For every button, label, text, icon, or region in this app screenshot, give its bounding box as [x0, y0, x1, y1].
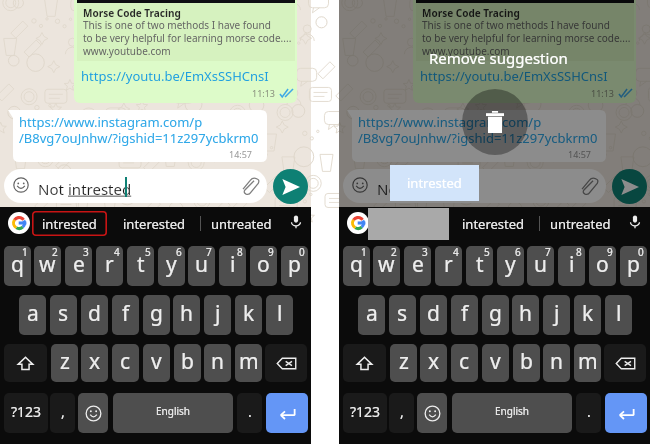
- button[interactable]: p: [281, 246, 308, 286]
- staticText: 5: [484, 246, 490, 259]
- button[interactable]: s: [50, 295, 77, 335]
- button[interactable]: Backspace: [604, 344, 646, 382]
- button[interactable]: t: [127, 246, 154, 286]
- button[interactable]: w: [34, 246, 61, 286]
- button[interactable]: Emoji: [417, 393, 447, 433]
- button[interactable]: u: [188, 246, 215, 286]
- staticText: t: [476, 250, 484, 279]
- button[interactable]: w: [373, 246, 400, 286]
- button[interactable]: v: [482, 344, 509, 382]
- staticText: a: [366, 299, 378, 328]
- staticText: j: [215, 299, 221, 328]
- button[interactable]: p: [620, 246, 647, 286]
- button[interactable]: e: [65, 246, 92, 286]
- button[interactable]: g: [482, 295, 509, 335]
- staticText: n: [211, 347, 224, 376]
- button[interactable]: ?123: [343, 393, 387, 433]
- button[interactable]: Voice input: [283, 209, 308, 234]
- staticText: l: [277, 299, 283, 328]
- button[interactable]: interested: [116, 210, 192, 237]
- button[interactable]: n: [543, 344, 570, 382]
- button[interactable]: English: [113, 393, 233, 433]
- button[interactable]: ?123: [4, 393, 48, 433]
- staticText: b: [520, 347, 533, 376]
- button[interactable]: Enter: [266, 393, 308, 433]
- button[interactable]: b: [513, 344, 540, 382]
- staticText: to be very helpful for learning morse co…: [422, 31, 631, 45]
- button[interactable]: Enter: [605, 393, 647, 433]
- staticText: www.youtube.com: [422, 44, 510, 58]
- button[interactable]: c: [112, 344, 139, 382]
- button[interactable]: k: [235, 295, 262, 335]
- button[interactable]: r: [435, 246, 462, 286]
- button[interactable]: Not: [4, 169, 267, 203]
- button[interactable]: v: [143, 344, 170, 382]
- staticText: t: [137, 250, 145, 279]
- button[interactable]: j: [204, 295, 231, 335]
- button[interactable]: Send: [612, 169, 647, 204]
- button[interactable]: e: [404, 246, 431, 286]
- button[interactable]: English: [452, 393, 572, 433]
- button[interactable]: x: [420, 344, 447, 382]
- button[interactable]: Google: [347, 212, 369, 234]
- button[interactable]: n: [204, 344, 231, 382]
- button[interactable]: untreated: [205, 210, 277, 237]
- button[interactable]: intrested: [32, 211, 107, 236]
- staticText: 1: [22, 246, 28, 259]
- button[interactable]: j: [543, 295, 570, 335]
- button[interactable]: l: [266, 295, 293, 335]
- button[interactable]: d: [420, 295, 447, 335]
- button[interactable]: o: [250, 246, 277, 286]
- button[interactable]: Send: [273, 169, 308, 204]
- button[interactable]: o: [589, 246, 616, 286]
- button[interactable]: b: [174, 344, 201, 382]
- button[interactable]: l: [605, 295, 632, 335]
- button[interactable]: ,: [389, 393, 414, 433]
- button[interactable]: .: [237, 393, 262, 433]
- button[interactable]: Shift: [343, 344, 386, 382]
- button[interactable]: .: [576, 393, 601, 433]
- button[interactable]: q: [343, 246, 370, 286]
- button[interactable]: d: [81, 295, 108, 335]
- button[interactable]: z: [51, 344, 78, 382]
- button[interactable]: y: [158, 246, 185, 286]
- button[interactable]: h: [173, 295, 200, 335]
- button[interactable]: m: [235, 344, 262, 382]
- button[interactable]: f: [451, 295, 478, 335]
- button[interactable]: h: [512, 295, 539, 335]
- staticText: i: [569, 250, 575, 279]
- button[interactable]: c: [451, 344, 478, 382]
- button[interactable]: q: [4, 246, 31, 286]
- button[interactable]: y: [497, 246, 524, 286]
- button[interactable]: Not: [343, 169, 606, 203]
- staticText: untreated: [550, 215, 611, 233]
- staticText: j: [554, 299, 560, 328]
- button[interactable]: z: [390, 344, 417, 382]
- button[interactable]: Remove suggestion: [462, 89, 528, 155]
- button[interactable]: a: [19, 295, 46, 335]
- button[interactable]: Google: [8, 212, 30, 234]
- button[interactable]: a: [358, 295, 385, 335]
- staticText: Not: [377, 179, 403, 199]
- button[interactable]: s: [389, 295, 416, 335]
- button[interactable]: k: [574, 295, 601, 335]
- button[interactable]: untreated: [544, 210, 616, 237]
- button[interactable]: r: [96, 246, 123, 286]
- button[interactable]: f: [112, 295, 139, 335]
- button[interactable]: m: [574, 344, 601, 382]
- staticText: 5: [145, 246, 151, 259]
- button[interactable]: Emoji: [78, 393, 108, 433]
- button[interactable]: x: [81, 344, 108, 382]
- button[interactable]: interested: [455, 210, 531, 237]
- button[interactable]: Voice input: [622, 209, 647, 234]
- button[interactable]: t: [466, 246, 493, 286]
- button[interactable]: Shift: [4, 344, 47, 382]
- button[interactable]: i: [558, 246, 585, 286]
- button[interactable]: g: [143, 295, 170, 335]
- staticText: 7: [206, 246, 212, 259]
- button[interactable]: u: [527, 246, 554, 286]
- button[interactable]: Backspace: [265, 344, 307, 382]
- staticText: i: [230, 250, 236, 279]
- button[interactable]: ,: [50, 393, 75, 433]
- button[interactable]: i: [219, 246, 246, 286]
